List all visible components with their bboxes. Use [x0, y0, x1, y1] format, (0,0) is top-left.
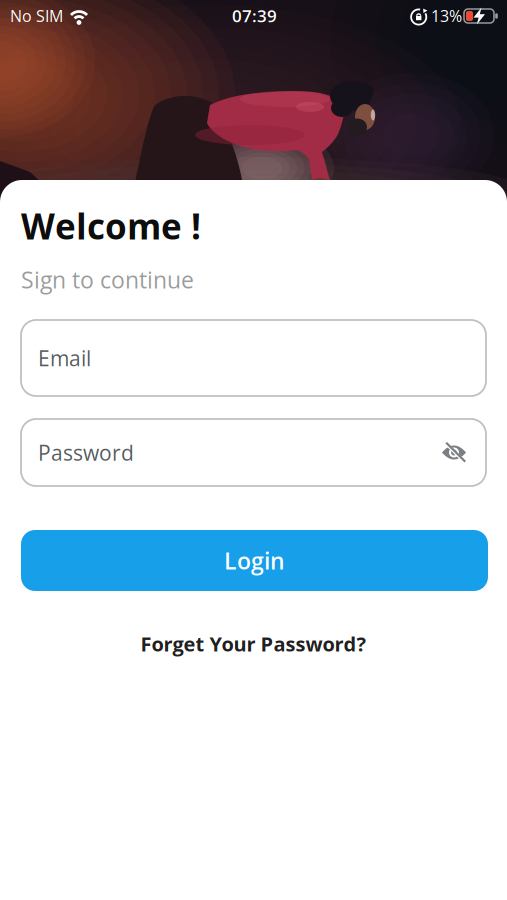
button[interactable]: Login: [21, 530, 488, 591]
staticText: Welcome !: [21, 202, 201, 250]
staticText: Sign to continue: [21, 264, 194, 295]
staticText: Login: [224, 545, 285, 576]
staticText: 13%: [431, 5, 462, 27]
staticText: No SIM: [10, 5, 63, 27]
button[interactable]: Password: [21, 419, 486, 486]
staticText: Email: [38, 344, 91, 372]
staticText: Password: [38, 438, 134, 467]
staticText: Forget Your Password?: [140, 630, 366, 657]
button[interactable]: Email: [21, 320, 486, 396]
button[interactable]: Forget Your Password?: [0, 630, 507, 657]
staticText: 07:39: [232, 4, 277, 27]
